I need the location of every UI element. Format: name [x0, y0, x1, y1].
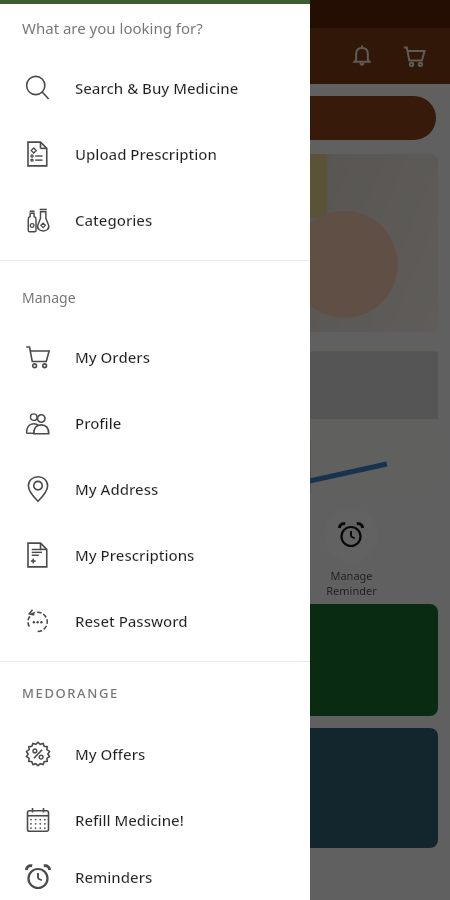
button[interactable]: Categories [0, 187, 310, 253]
button[interactable]: Manage Reminder [324, 508, 378, 598]
staticText: MEDORANGE [22, 684, 119, 702]
staticText: Manage [22, 288, 76, 307]
staticText: Upload Prescription [75, 144, 217, 164]
staticText: Refill Medicine! [75, 810, 184, 830]
button[interactable]: Reminders [0, 853, 310, 900]
staticText: My Orders [75, 347, 150, 367]
button[interactable]: Refer & Earn on the app [12, 604, 438, 716]
staticText: My Offers [75, 744, 146, 764]
staticText: Reminders [75, 867, 153, 887]
button[interactable] [12, 728, 438, 848]
button[interactable]: Cart [392, 34, 436, 78]
staticText: My Address [75, 479, 159, 499]
staticText: What are you looking for? [22, 18, 203, 38]
button[interactable]: Refill Medicine! [0, 787, 310, 853]
button[interactable]: Notifications [340, 34, 384, 78]
button[interactable] [12, 154, 438, 332]
button[interactable]: Manage Reminder [72, 508, 126, 598]
button[interactable]: Reset Password [0, 588, 310, 654]
staticText: Search & Buy Medicine [75, 78, 239, 98]
button[interactable]: Search medicine and otc product [14, 96, 436, 140]
button[interactable]: My Prescriptions [0, 522, 310, 588]
button[interactable]: Upload Prescription [0, 121, 310, 187]
staticText: Manage Reminder [326, 568, 377, 598]
button[interactable]: Profile [0, 390, 310, 456]
staticText: Categories [75, 210, 153, 230]
button[interactable]: Search & Buy Medicine [0, 55, 310, 121]
staticText: Refer & Earn on the app [28, 649, 217, 671]
staticText: Profile [75, 413, 122, 433]
staticText: Reset Password [75, 611, 188, 631]
button[interactable] [12, 344, 438, 494]
staticText: My Prescriptions [75, 545, 195, 565]
button[interactable]: My Address [0, 456, 310, 522]
button[interactable]: My Offers [0, 721, 310, 787]
button[interactable]: My Orders [0, 324, 310, 390]
